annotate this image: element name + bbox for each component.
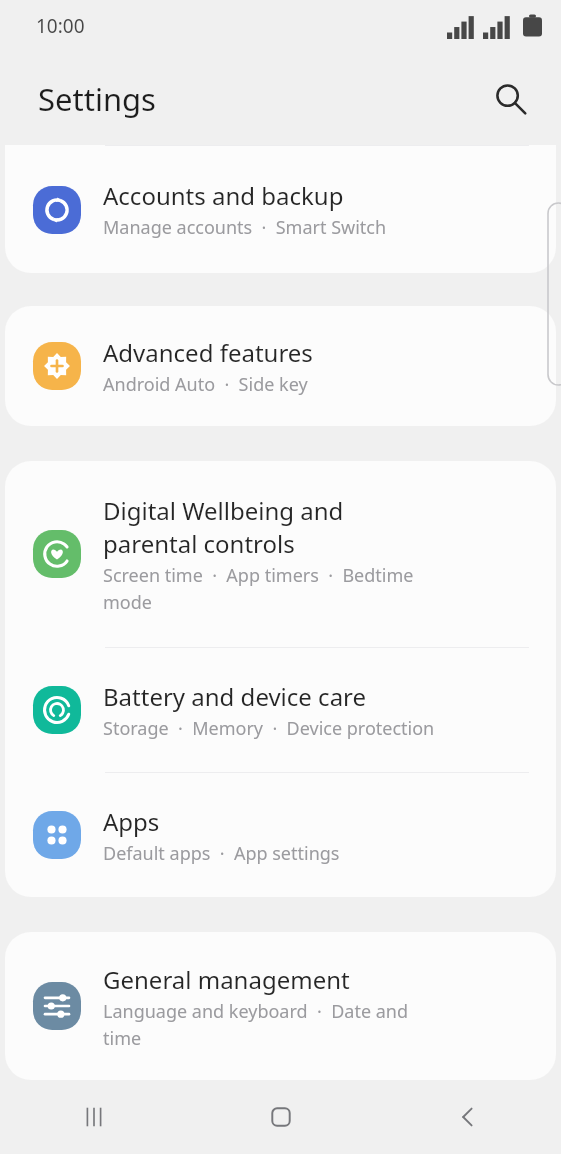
staticText: Accounts and backup (103, 179, 344, 212)
staticText: General management (103, 963, 350, 996)
staticText: Digital Wellbeing and parental controls (103, 494, 344, 560)
staticText: Screen time · App timers · Bedtime mode (103, 563, 414, 614)
button[interactable]: General management (5, 932, 556, 1080)
button[interactable]: Advanced features (5, 306, 556, 426)
button[interactable]: Back (374, 1080, 561, 1154)
staticText: 10:00 (36, 13, 85, 39)
button[interactable]: Digital Wellbeing and parental controls (5, 461, 556, 647)
staticText: Storage · Memory · Device protection (103, 716, 435, 741)
button[interactable]: Apps (5, 773, 556, 897)
staticText: Apps (103, 805, 160, 838)
staticText: Advanced features (103, 336, 313, 369)
button[interactable]: Battery and device care (5, 648, 556, 772)
button[interactable]: Search (483, 71, 539, 127)
staticText: Manage accounts · Smart Switch (103, 215, 387, 240)
button[interactable]: Recent apps (0, 1080, 187, 1154)
staticText: Android Auto · Side key (103, 372, 308, 397)
staticText: Battery and device care (103, 680, 367, 713)
button[interactable]: Home (187, 1080, 374, 1154)
button[interactable]: Accounts and backup (5, 146, 556, 273)
staticText: Settings (38, 78, 156, 120)
staticText: Default apps · App settings (103, 841, 340, 866)
staticText: Language and keyboard · Date and time (103, 999, 409, 1050)
